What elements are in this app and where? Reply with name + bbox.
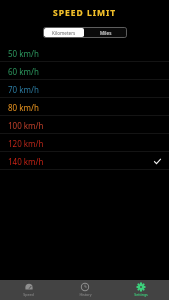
button[interactable]: 140 km/h xyxy=(0,152,169,170)
staticText: History xyxy=(79,292,92,297)
staticText: Settings xyxy=(134,292,148,297)
staticText: 50 km/h xyxy=(8,48,39,59)
button[interactable]: 100 km/h xyxy=(0,116,169,134)
staticText: SPEED LIMIT xyxy=(53,7,117,19)
staticText: 100 km/h xyxy=(8,120,44,131)
staticText: Speed xyxy=(23,292,34,297)
button[interactable]: Miles xyxy=(85,27,127,38)
staticText: Kilometers xyxy=(52,30,76,36)
button[interactable]: 60 km/h xyxy=(0,62,169,80)
staticText: 120 km/h xyxy=(8,138,44,149)
button[interactable]: Speed xyxy=(0,280,57,300)
staticText: Miles xyxy=(100,30,112,36)
button[interactable]: Settings xyxy=(113,280,169,300)
staticText: 80 km/h xyxy=(8,102,39,113)
button[interactable]: History xyxy=(57,280,113,300)
staticText: 70 km/h xyxy=(8,84,39,95)
button[interactable]: 80 km/h xyxy=(0,98,169,116)
button[interactable]: 50 km/h xyxy=(0,44,169,62)
button[interactable]: 70 km/h xyxy=(0,80,169,98)
button[interactable]: Kilometers xyxy=(44,28,84,37)
button[interactable]: 120 km/h xyxy=(0,134,169,152)
staticText: 140 km/h xyxy=(8,156,44,167)
staticText: 60 km/h xyxy=(8,66,39,77)
